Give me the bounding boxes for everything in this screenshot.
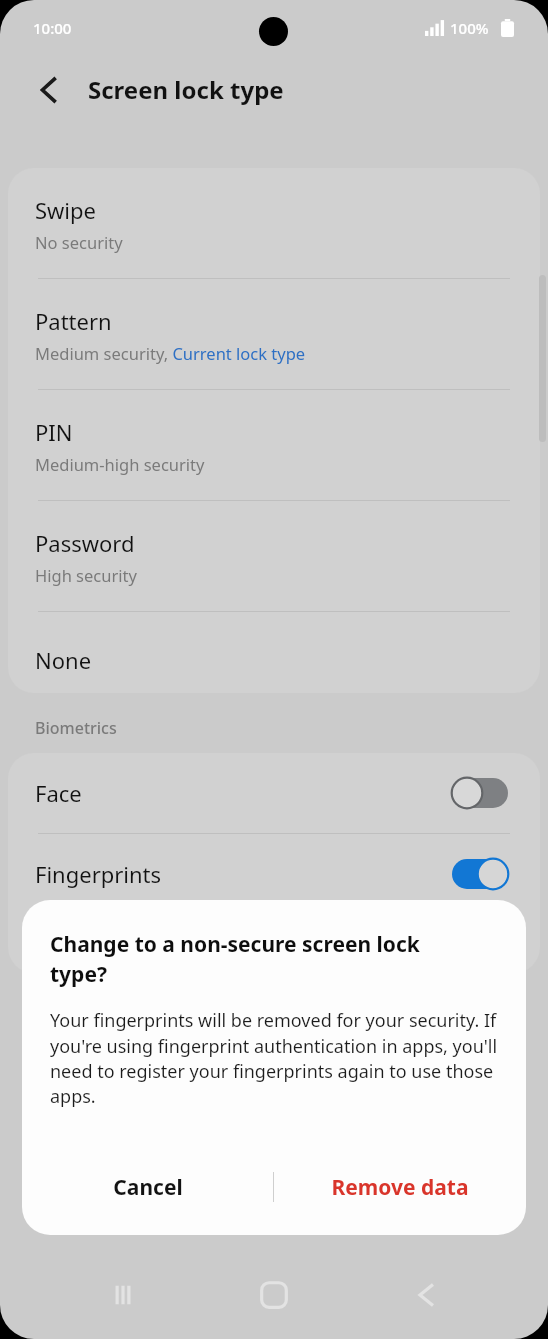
button[interactable]: Password xyxy=(8,501,540,611)
staticText: Your fingerprints will be removed for yo… xyxy=(50,1008,498,1108)
staticText: None xyxy=(35,645,92,675)
button[interactable]: Back xyxy=(22,64,74,116)
staticText: Medium security, Current lock type xyxy=(35,342,306,364)
staticText: Biometrics xyxy=(35,717,117,739)
staticText: Password xyxy=(35,528,135,558)
staticText: Medium-high security xyxy=(35,453,205,475)
staticText: Cancel xyxy=(113,1173,183,1202)
staticText: Change to a non-secure screen lock type? xyxy=(50,930,470,988)
button[interactable]: PIN xyxy=(8,390,540,500)
button[interactable]: Recent apps xyxy=(95,1271,151,1327)
staticText: Swipe xyxy=(35,195,96,225)
button[interactable]: Pattern xyxy=(8,279,540,389)
button[interactable]: Cancel xyxy=(22,1139,273,1235)
button[interactable]: None xyxy=(8,612,540,693)
staticText: 10:00 xyxy=(33,18,72,38)
staticText: PIN xyxy=(35,417,73,447)
staticText: Fingerprints xyxy=(35,859,162,889)
button[interactable]: Back xyxy=(396,1271,452,1327)
staticText: Screen lock type xyxy=(88,73,284,106)
staticText: Face xyxy=(35,778,82,808)
staticText: No security xyxy=(35,231,123,253)
staticText: 100% xyxy=(450,18,489,38)
button[interactable]: Home xyxy=(246,1271,302,1327)
button[interactable]: Swipe xyxy=(8,168,540,278)
button[interactable]: Face xyxy=(8,753,540,833)
button[interactable]: Remove data xyxy=(274,1139,526,1235)
staticText: Remove data xyxy=(331,1173,469,1202)
staticText: Pattern xyxy=(35,306,112,336)
button[interactable]: Fingerprints xyxy=(8,834,540,914)
staticText: High security xyxy=(35,564,137,586)
